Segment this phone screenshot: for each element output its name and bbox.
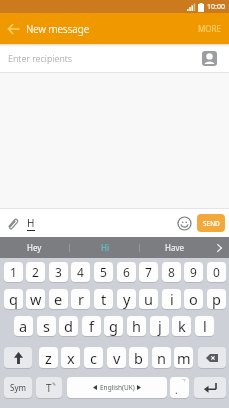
button[interactable]: q bbox=[4, 289, 23, 309]
staticText: SEND bbox=[203, 219, 220, 228]
button[interactable]: 8 bbox=[162, 262, 181, 282]
button[interactable]: Hi bbox=[70, 237, 139, 258]
staticText: g bbox=[109, 316, 118, 336]
button[interactable]: 5 bbox=[94, 262, 113, 282]
button[interactable]: 7 bbox=[139, 262, 158, 282]
button[interactable]: l bbox=[195, 316, 214, 336]
button[interactable]: n bbox=[152, 347, 171, 368]
staticText: 4 bbox=[77, 264, 84, 280]
button[interactable]: English(UK) bbox=[67, 377, 167, 398]
staticText: o bbox=[189, 289, 198, 309]
staticText: 3 bbox=[55, 264, 62, 280]
button[interactable]: w bbox=[26, 289, 45, 309]
button[interactable]: 1 bbox=[4, 262, 23, 282]
button[interactable]: r bbox=[71, 289, 90, 309]
button[interactable]: o bbox=[184, 289, 203, 309]
staticText: y bbox=[123, 289, 131, 309]
staticText: a bbox=[19, 316, 28, 336]
staticText: Hey bbox=[27, 242, 42, 253]
staticText: v bbox=[113, 348, 121, 368]
staticText: s bbox=[43, 316, 50, 336]
staticText: 7 bbox=[145, 264, 152, 280]
button[interactable]: 9 bbox=[184, 262, 203, 282]
button[interactable]: t bbox=[94, 289, 113, 309]
staticText: Hi bbox=[101, 242, 109, 253]
staticText: 0 bbox=[213, 264, 220, 280]
button[interactable]: m bbox=[174, 347, 193, 368]
button[interactable]: j bbox=[150, 316, 169, 336]
button[interactable]: i bbox=[162, 289, 181, 309]
staticText: m bbox=[177, 348, 191, 368]
staticText: Have bbox=[165, 242, 184, 253]
staticText: f bbox=[89, 316, 94, 336]
staticText: . bbox=[175, 383, 178, 397]
button[interactable]: Enter recipients bbox=[0, 44, 229, 72]
staticText: t bbox=[101, 289, 107, 309]
button[interactable]: e bbox=[49, 289, 68, 309]
staticText: 9 bbox=[190, 264, 197, 280]
button[interactable]: 0 bbox=[207, 262, 226, 282]
button[interactable]: "? bbox=[170, 377, 189, 398]
button[interactable]: z bbox=[39, 347, 58, 368]
button[interactable]: T bbox=[36, 377, 62, 398]
staticText: 6 bbox=[123, 264, 130, 280]
button[interactable] bbox=[194, 377, 226, 398]
button[interactable] bbox=[0, 13, 26, 44]
button[interactable]: x bbox=[61, 347, 80, 368]
button[interactable]: 2 bbox=[26, 262, 45, 282]
button[interactable]: 3 bbox=[49, 262, 68, 282]
button[interactable]: Have bbox=[140, 237, 209, 258]
staticText: 8 bbox=[168, 264, 175, 280]
button[interactable]: g bbox=[104, 316, 123, 336]
button[interactable] bbox=[201, 50, 217, 66]
button[interactable]: SEND bbox=[197, 214, 225, 232]
staticText: English(UK) bbox=[100, 383, 135, 392]
staticText: 2 bbox=[32, 264, 39, 280]
button[interactable]: b bbox=[129, 347, 148, 368]
staticText: ✎ bbox=[52, 381, 57, 387]
staticText: x bbox=[67, 348, 75, 368]
staticText: 10:00 bbox=[207, 2, 225, 12]
staticText: z bbox=[45, 348, 52, 368]
button[interactable]: y bbox=[117, 289, 136, 309]
button[interactable] bbox=[4, 347, 32, 368]
button[interactable] bbox=[6, 217, 20, 231]
button[interactable]: s bbox=[37, 316, 56, 336]
button[interactable]: Hey bbox=[0, 237, 69, 258]
staticText: n bbox=[157, 348, 166, 368]
staticText: d bbox=[64, 316, 73, 336]
staticText: MORE bbox=[198, 23, 221, 34]
staticText: c bbox=[90, 348, 97, 368]
button[interactable]: Sym bbox=[4, 377, 32, 398]
staticText: Enter recipients bbox=[8, 52, 73, 64]
button[interactable]: MORE bbox=[190, 15, 229, 42]
button[interactable]: a bbox=[14, 316, 33, 336]
staticText: k bbox=[178, 316, 186, 336]
staticText: j bbox=[158, 316, 162, 336]
staticText: r bbox=[78, 289, 84, 309]
button[interactable]: p bbox=[207, 289, 226, 309]
staticText: q bbox=[9, 289, 18, 309]
staticText: H bbox=[27, 216, 35, 230]
button[interactable]: d bbox=[59, 316, 78, 336]
staticText: w bbox=[30, 289, 42, 309]
button[interactable]: 4 bbox=[71, 262, 90, 282]
button[interactable] bbox=[176, 215, 192, 231]
staticText: h bbox=[132, 316, 141, 336]
staticText: 5 bbox=[100, 264, 107, 280]
button[interactable]: k bbox=[172, 316, 191, 336]
button[interactable]: 6 bbox=[117, 262, 136, 282]
staticText: 1 bbox=[10, 264, 17, 280]
button[interactable]: c bbox=[84, 347, 103, 368]
button[interactable]: f bbox=[82, 316, 101, 336]
staticText: Sym bbox=[10, 382, 26, 393]
button[interactable] bbox=[198, 347, 226, 368]
button[interactable]: u bbox=[139, 289, 158, 309]
button[interactable] bbox=[209, 237, 229, 258]
staticText: b bbox=[134, 348, 143, 368]
button[interactable]: h bbox=[127, 316, 146, 336]
staticText: l bbox=[203, 316, 207, 336]
staticText: New message bbox=[26, 22, 90, 36]
button[interactable]: v bbox=[107, 347, 126, 368]
staticText: u bbox=[144, 289, 153, 309]
